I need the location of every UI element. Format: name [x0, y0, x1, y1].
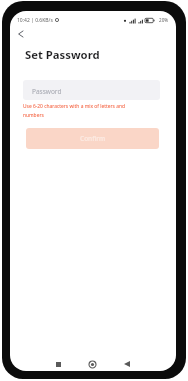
- staticText: Confirm: [80, 134, 106, 143]
- staticText: 10:42 | 0.6KB/s: [17, 17, 53, 24]
- button[interactable]: Confirm: [26, 128, 159, 149]
- staticText: Use 6-20 characters with a mix of letter…: [23, 103, 129, 118]
- staticText: 20%: [159, 17, 169, 23]
- button[interactable]: Home: [86, 358, 98, 370]
- button[interactable]: Back: [121, 358, 133, 370]
- staticText: Set Password: [25, 47, 100, 62]
- button[interactable]: Recents: [52, 358, 64, 370]
- button[interactable]: Password: [23, 80, 160, 100]
- staticText: Password: [32, 87, 62, 96]
- button[interactable]: Back: [13, 27, 27, 41]
